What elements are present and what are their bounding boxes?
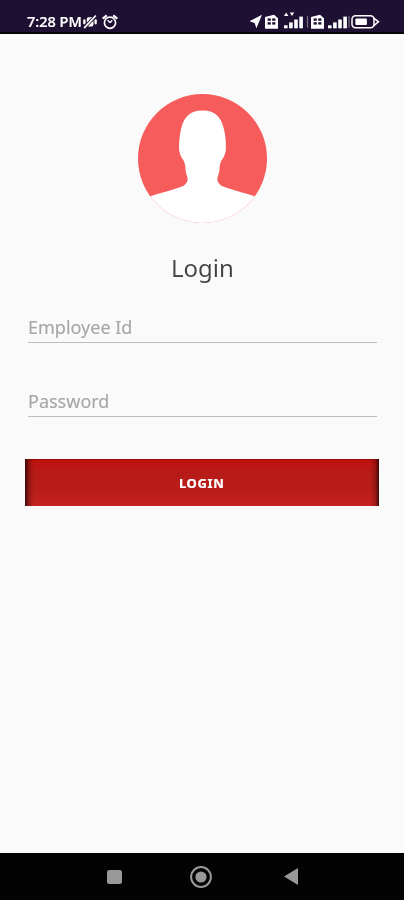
staticText: Password <box>28 389 110 414</box>
staticText: Login <box>171 251 234 284</box>
staticText: 7:28 PM <box>27 11 82 31</box>
button[interactable]: Recent apps <box>86 853 142 900</box>
button[interactable]: Back <box>263 853 319 900</box>
staticText: Employee Id <box>28 315 133 340</box>
button[interactable]: LOGIN <box>25 459 379 506</box>
staticText: LOGIN <box>179 474 225 492</box>
button[interactable]: Home <box>173 853 229 900</box>
